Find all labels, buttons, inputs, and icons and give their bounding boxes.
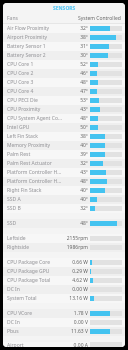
button[interactable]: Leftside [3, 234, 125, 243]
staticText: 0.00 A [62, 342, 88, 347]
staticText: CPU VCore [7, 310, 62, 317]
staticText: 0.00 W [62, 286, 88, 293]
button[interactable]: CPU Core 4 [3, 87, 125, 96]
staticText: CPU Core 2 [7, 70, 62, 77]
staticText: Air Flow Proximity [7, 25, 62, 32]
button[interactable]: Battery Sensor 1 [3, 42, 125, 51]
staticText: 39° [62, 151, 88, 158]
staticText: CPU Package GPU [7, 268, 62, 275]
button[interactable]: CPU PECI Die [3, 96, 125, 105]
button[interactable]: CPU Package GPU [3, 267, 125, 276]
staticText: 32° [62, 160, 88, 167]
staticText: SENSORS [53, 5, 76, 12]
staticText: Palm Rest Actuator [7, 160, 62, 167]
staticText: 31° [62, 43, 88, 50]
button[interactable]: CPU Core 1 [3, 60, 125, 69]
button[interactable]: CPU Proximity [3, 105, 125, 114]
staticText: 4.62 W [62, 277, 88, 284]
button[interactable]: SENSORS [3, 3, 125, 13]
staticText: CPU Core 3 [7, 79, 62, 86]
staticText: Left Fin Stack [7, 133, 62, 140]
staticText: CPU PECI Die [7, 97, 62, 104]
staticText: 48° [62, 115, 88, 122]
button[interactable]: Airport Proximity [3, 33, 125, 42]
staticText: System Controlled [78, 15, 121, 22]
button[interactable]: DC In [3, 318, 125, 327]
button[interactable]: Memory Proximity [3, 141, 125, 150]
staticText: 40° [62, 187, 88, 194]
staticText: Airport Proximity [7, 34, 62, 41]
button[interactable]: CPU Package Total [3, 276, 125, 285]
button[interactable]: CPU System Agent Core [3, 114, 125, 123]
staticText: Platform Controller Hub PECI [7, 178, 62, 185]
staticText: 40° [62, 142, 88, 149]
staticText: 43° [62, 106, 88, 113]
staticText: Battery Sensor 1 [7, 43, 62, 50]
staticText: 0.00 V [62, 319, 88, 326]
button[interactable]: Fans [3, 13, 125, 23]
button[interactable]: CPU Core 2 [3, 69, 125, 78]
staticText: CPU Package Total [7, 277, 62, 284]
staticText: 11.63 V [62, 328, 88, 335]
button[interactable]: CPU Package Core [3, 258, 125, 267]
staticText: 48° [62, 79, 88, 86]
button[interactable]: CPU Core 3 [3, 78, 125, 87]
button[interactable]: CPU VCore [3, 309, 125, 318]
staticText: Rightside [7, 244, 62, 251]
button[interactable]: Rightside [3, 243, 125, 252]
staticText: Memory Proximity [7, 142, 62, 149]
button[interactable]: Intel GPU [3, 123, 125, 132]
staticText: 53° [62, 97, 88, 104]
button[interactable]: DC In [3, 285, 125, 294]
staticText: CPU System Agent Core [7, 115, 62, 122]
staticText: Battery Sensor 2 [7, 52, 62, 59]
staticText: SSD B [7, 205, 62, 212]
staticText: 1986rpm [62, 244, 88, 251]
button[interactable]: Right Fin Stack [3, 186, 125, 195]
button[interactable]: Palm Rest Actuator [3, 159, 125, 168]
staticText: Right Fin Stack [7, 187, 62, 194]
staticText: DC In [7, 286, 62, 293]
staticText: Intel GPU [7, 124, 62, 131]
staticText: Palm Rest [7, 151, 62, 158]
staticText: Platform Controller Hub [7, 169, 62, 176]
button[interactable]: Palm Rest [3, 150, 125, 159]
button[interactable]: Airport [3, 342, 125, 347]
staticText: CPU Core 1 [7, 61, 62, 68]
staticText: 1.78 V [62, 310, 88, 317]
button[interactable]: Platform Controller Hub [3, 168, 125, 177]
staticText: CPU Core 4 [7, 88, 62, 95]
staticText: Airport [7, 342, 62, 347]
staticText: System Total [7, 295, 62, 302]
staticText: 0.29 W [62, 268, 88, 275]
staticText: 30° [62, 52, 88, 59]
staticText: 40° [62, 196, 88, 203]
staticText: 32° [62, 25, 88, 32]
button[interactable]: Pbus [3, 327, 125, 336]
button[interactable]: Left Fin Stack [3, 132, 125, 141]
staticText: 47° [62, 88, 88, 95]
staticText: 48° [62, 178, 88, 185]
staticText: 38° [62, 133, 88, 140]
button[interactable]: SSD A [3, 195, 125, 204]
button[interactable]: System Total [3, 294, 125, 303]
button[interactable]: SSD [3, 219, 125, 228]
staticText: 0.66 W [62, 259, 88, 266]
staticText: 13.16 W [62, 295, 88, 302]
button[interactable]: Air Flow Proximity [3, 24, 125, 33]
staticText: CPU Package Core [7, 259, 62, 266]
button[interactable]: Battery Sensor 2 [3, 51, 125, 60]
staticText: 46° [62, 70, 88, 77]
staticText: Leftside [7, 235, 62, 242]
staticText: 48° [62, 220, 88, 227]
staticText: 32° [62, 205, 88, 212]
button[interactable]: Platform Controller Hub PECI [3, 177, 125, 186]
staticText: 50° [62, 124, 88, 131]
button[interactable]: SSD B [3, 204, 125, 213]
staticText: 52° [62, 61, 88, 68]
staticText: CPU Proximity [7, 106, 62, 113]
staticText: Pbus [7, 328, 62, 335]
staticText: SSD A [7, 196, 62, 203]
staticText: Fans [7, 15, 78, 22]
staticText: DC In [7, 319, 62, 326]
